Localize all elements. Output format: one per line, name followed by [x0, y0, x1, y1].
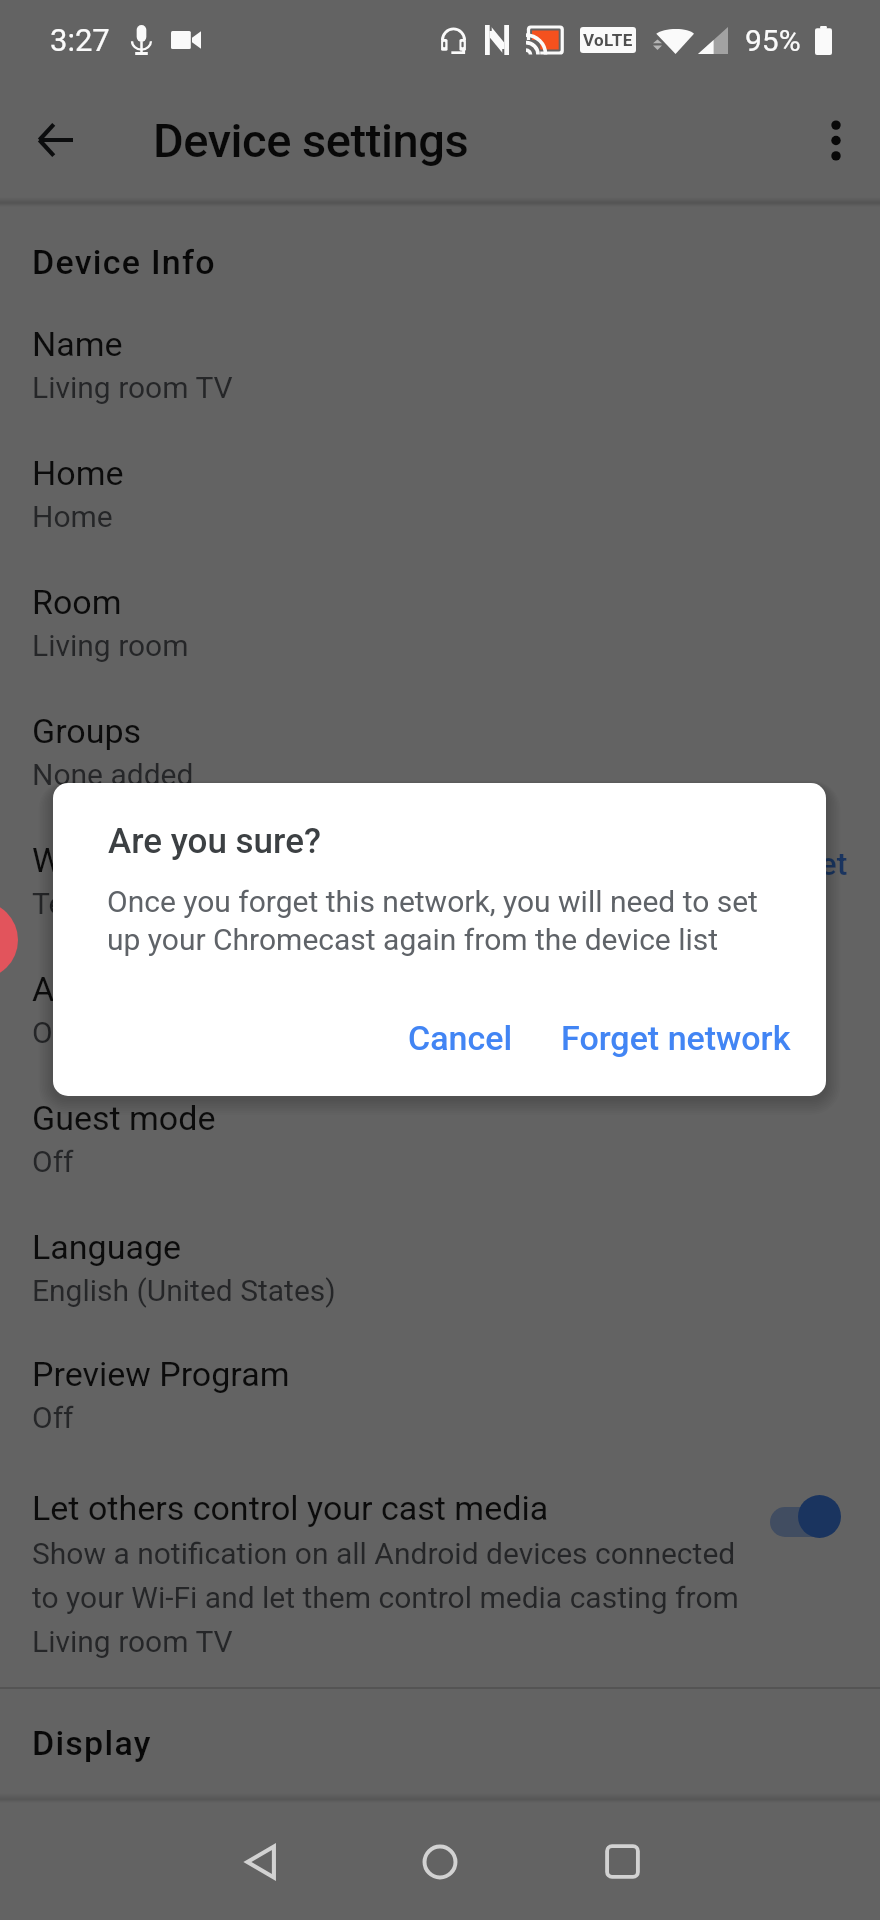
staticText: Preview Program: [32, 1354, 290, 1394]
staticText: Living room: [32, 628, 189, 663]
staticText: Groups: [32, 711, 142, 751]
staticText: 3:27: [50, 22, 110, 58]
staticText: Room: [32, 582, 122, 622]
staticText: Off: [32, 1144, 74, 1179]
button[interactable]: Name: [0, 282, 880, 405]
staticText: Guest mode: [32, 1098, 216, 1138]
staticText: Device settings: [153, 113, 469, 168]
button[interactable]: Navigate up: [0, 85, 110, 195]
staticText: Living room TV: [32, 370, 233, 405]
staticText: Off: [32, 1400, 74, 1435]
staticText: English (United States): [32, 1273, 336, 1308]
button[interactable]: Home: [0, 405, 880, 534]
staticText: Cancel: [408, 1018, 513, 1058]
staticText: Forget network: [561, 1018, 791, 1058]
staticText: TestNetwork: [32, 886, 202, 921]
staticText: Are you sure?: [108, 821, 321, 862]
staticText: Device Info: [32, 242, 216, 282]
button[interactable]: Back: [186, 1803, 336, 1920]
staticText: On: [32, 1015, 70, 1050]
staticText: Wi-Fi: [32, 840, 107, 880]
staticText: Ambient mode: [32, 969, 255, 1009]
button[interactable]: Let others control your cast media: [0, 1435, 880, 1659]
button[interactable]: Room: [0, 534, 880, 663]
staticText: 95%: [745, 23, 801, 58]
staticText: None added: [32, 757, 194, 792]
staticText: Language: [32, 1227, 182, 1267]
button[interactable]: Groups: [0, 663, 880, 792]
staticText: Show a notification on all Android devic…: [32, 1536, 750, 1659]
button[interactable]: Let others control your cast media toggl…: [768, 1488, 854, 1544]
staticText: Home: [32, 499, 113, 534]
staticText: Once you forget this network, you will n…: [107, 884, 774, 957]
button[interactable]: Language: [0, 1179, 880, 1308]
button[interactable]: Cancel: [399, 1004, 522, 1072]
button[interactable]: Ambient mode: [0, 921, 880, 1050]
staticText: Home: [32, 453, 124, 493]
button[interactable]: Preview Program: [0, 1308, 880, 1435]
staticText: Let others control your cast media: [32, 1488, 549, 1528]
staticText: VoLTE: [583, 30, 633, 50]
staticText: Display: [32, 1723, 152, 1763]
button[interactable]: Home: [365, 1803, 515, 1920]
button[interactable]: Forget: [755, 845, 848, 883]
staticText: Name: [32, 324, 123, 364]
button[interactable]: Guest mode: [0, 1050, 880, 1179]
button[interactable]: More options: [770, 85, 880, 195]
button[interactable]: Wi-Fi: [0, 792, 880, 921]
button[interactable]: Forget network: [552, 1004, 800, 1072]
button[interactable]: Recent apps: [547, 1803, 697, 1920]
